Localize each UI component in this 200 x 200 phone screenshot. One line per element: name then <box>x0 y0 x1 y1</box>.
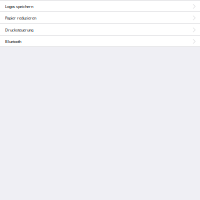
staticText: Drucksteuerung <box>5 27 33 32</box>
staticText: Papier reduzieren <box>5 15 36 20</box>
button[interactable]: Bluetooth <box>0 36 200 46</box>
button[interactable]: Drucksteuerung <box>0 24 200 35</box>
button[interactable]: Logos speichern <box>0 1 200 11</box>
staticText: Bluetooth <box>5 39 21 44</box>
staticText: Logos speichern <box>5 4 33 9</box>
button[interactable]: Papier reduzieren <box>0 12 200 23</box>
